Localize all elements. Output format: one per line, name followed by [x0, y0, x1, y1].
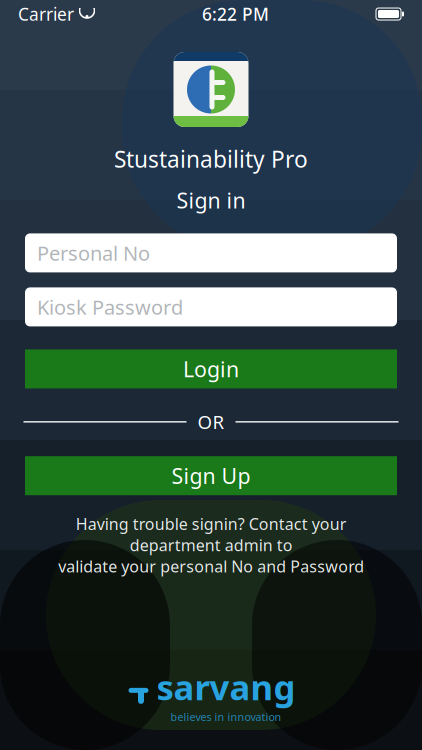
staticText: sarvang: [156, 664, 295, 710]
staticText: Sign Up: [171, 462, 250, 490]
button[interactable]: Login: [25, 349, 397, 388]
staticText: Login: [183, 355, 239, 383]
staticText: Kiosk Password: [37, 294, 183, 320]
staticText: OR: [197, 409, 224, 434]
staticText: Having trouble signin? Contact your depa…: [58, 513, 364, 577]
staticText: Carrier: [18, 2, 74, 25]
staticText: Stustainability Pro: [114, 144, 308, 174]
button[interactable]: Sign Up: [25, 456, 397, 495]
staticText: Sign in: [176, 186, 245, 214]
staticText: believes in innovation: [170, 710, 281, 724]
staticText: 6:22 PM: [202, 2, 269, 25]
staticText: Personal No: [37, 240, 150, 266]
